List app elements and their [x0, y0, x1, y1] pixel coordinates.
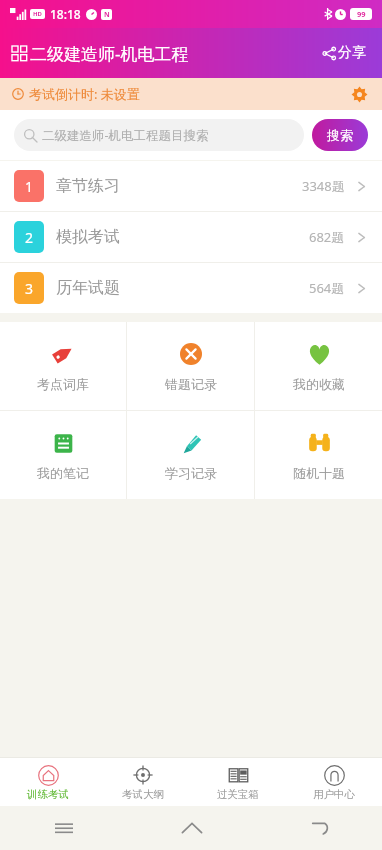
button[interactable]: Home	[177, 813, 207, 843]
staticText: 考试倒计时: 未设置	[29, 85, 140, 103]
staticText: 过关宝箱	[217, 788, 259, 801]
staticText: 二级建造师-机电工程题目搜索	[42, 127, 209, 144]
staticText: 99	[357, 9, 366, 19]
button[interactable]: 3	[0, 263, 382, 313]
staticText: 章节练习	[56, 176, 120, 196]
staticText: 模拟考试	[56, 227, 120, 247]
button[interactable]: 学习记录	[127, 411, 254, 499]
staticText: 682题	[309, 228, 345, 246]
staticText: 历年试题	[56, 278, 120, 298]
button[interactable]: 用户中心	[286, 758, 382, 806]
staticText: 错题记录	[165, 376, 217, 392]
staticText: 3	[25, 279, 34, 298]
staticText: 搜索	[327, 127, 353, 143]
staticText: 3348题	[302, 177, 345, 195]
staticText: 训练考试	[27, 788, 69, 801]
button[interactable]: Settings	[348, 83, 370, 105]
staticText: 考点词库	[37, 376, 89, 392]
staticText: 18:18	[50, 6, 81, 22]
button[interactable]: 错题记录	[127, 322, 254, 410]
button[interactable]: Share	[319, 40, 370, 66]
staticText: 分享	[338, 44, 366, 62]
button[interactable]: 我的笔记	[0, 411, 126, 499]
button[interactable]: 考试大纲	[95, 758, 190, 806]
button[interactable]: 考试倒计时: 未设置	[0, 78, 382, 110]
staticText: N	[104, 10, 110, 20]
staticText: 学习记录	[165, 465, 217, 481]
staticText: 我的笔记	[37, 465, 89, 481]
other: Share	[323, 47, 336, 60]
staticText: 随机十题	[293, 465, 345, 481]
button[interactable]: 二级建造师-机电工程题目搜索	[14, 119, 304, 151]
button[interactable]: Back	[304, 813, 334, 843]
staticText: 用户中心	[313, 788, 355, 801]
button[interactable]: 随机十题	[255, 411, 382, 499]
button[interactable]: 过关宝箱	[190, 758, 286, 806]
button[interactable]: 搜索	[312, 119, 368, 151]
staticText: 考试大纲	[122, 788, 164, 801]
staticText: 1	[25, 177, 34, 196]
button[interactable]: 1	[0, 161, 382, 211]
button[interactable]: 考点词库	[0, 322, 126, 410]
staticText: HD	[33, 10, 42, 18]
button[interactable]: 我的收藏	[255, 322, 382, 410]
button[interactable]: 2	[0, 212, 382, 262]
staticText: 二级建造师-机电工程	[30, 42, 189, 65]
staticText: 2	[25, 228, 34, 247]
button[interactable]: Recents	[49, 813, 79, 843]
staticText: 我的收藏	[293, 376, 345, 392]
staticText: 564题	[309, 279, 345, 297]
button[interactable]: 训练考试	[0, 758, 95, 806]
